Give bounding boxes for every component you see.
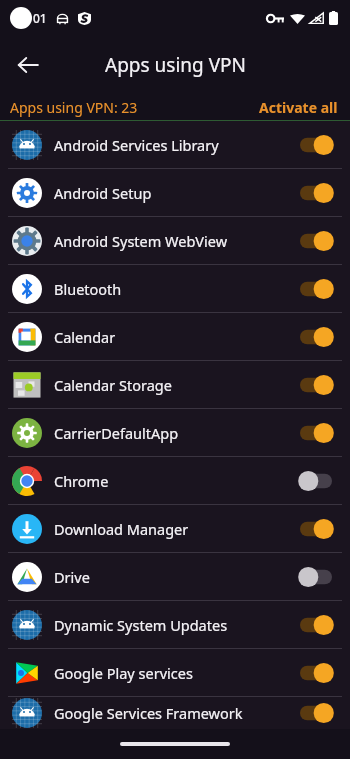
button[interactable]: Enabled xyxy=(296,275,336,303)
button[interactable]: Disabled xyxy=(296,467,336,495)
staticText: Calendar Storage xyxy=(54,375,172,395)
staticText: Google Services Framework xyxy=(54,703,243,723)
button[interactable]: Enabled xyxy=(296,323,336,351)
button[interactable]: Disabled xyxy=(296,563,336,591)
staticText: Calendar xyxy=(54,327,116,347)
staticText: Android Setup xyxy=(54,183,152,203)
button[interactable]: Enabled xyxy=(296,371,336,399)
button[interactable]: Activate all xyxy=(257,96,340,119)
button[interactable]: Back xyxy=(6,43,50,87)
button[interactable]: Drive xyxy=(0,553,350,600)
staticText: Activate all xyxy=(259,98,338,117)
staticText: CarrierDefaultApp xyxy=(54,423,179,443)
staticText: Android System WebView xyxy=(54,231,228,251)
button[interactable]: Enabled xyxy=(296,515,336,543)
staticText: Drive xyxy=(54,567,90,587)
button[interactable]: Enabled xyxy=(296,659,336,687)
button[interactable]: Google Services Framework xyxy=(0,697,350,729)
button[interactable]: Chrome xyxy=(0,457,350,504)
button[interactable]: Bluetooth xyxy=(0,265,350,312)
button[interactable]: Calendar xyxy=(0,313,350,360)
staticText: Apps using VPN xyxy=(105,52,246,78)
button[interactable]: Enabled xyxy=(296,179,336,207)
staticText: Download Manager xyxy=(54,519,189,539)
staticText: Chrome xyxy=(54,471,109,491)
button[interactable]: Download Manager xyxy=(0,505,350,552)
button[interactable]: Enabled xyxy=(296,611,336,639)
button[interactable]: Google Play services xyxy=(0,649,350,696)
button[interactable]: Enabled xyxy=(296,227,336,255)
button[interactable]: Dynamic System Updates xyxy=(0,601,350,648)
staticText: Google Play services xyxy=(54,663,193,683)
staticText: 01 xyxy=(33,10,47,26)
staticText: Dynamic System Updates xyxy=(54,615,228,635)
staticText: Android Services Library xyxy=(54,135,219,155)
button[interactable]: Android Setup xyxy=(0,169,350,216)
staticText: Bluetooth xyxy=(54,279,122,299)
button[interactable]: Android System WebView xyxy=(0,217,350,264)
button[interactable]: Calendar Storage xyxy=(0,361,350,408)
button[interactable]: Android Services Library xyxy=(0,121,350,168)
button[interactable]: Enabled xyxy=(296,419,336,447)
staticText: Apps using VPN: 23 xyxy=(10,98,138,117)
button[interactable]: CarrierDefaultApp xyxy=(0,409,350,456)
button[interactable]: Enabled xyxy=(296,699,336,727)
button[interactable]: Enabled xyxy=(296,131,336,159)
